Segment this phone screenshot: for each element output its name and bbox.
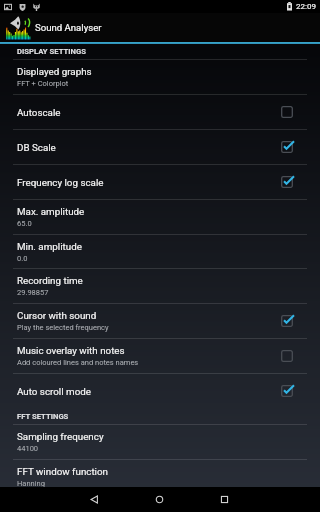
button[interactable]: Sampling frequency <box>0 425 320 459</box>
button[interactable]: Frequency log scale <box>0 165 320 199</box>
staticText: Autoscale <box>17 107 61 118</box>
staticText: Play the selected frequency <box>17 323 109 332</box>
button[interactable]: Back <box>82 487 107 512</box>
staticText: Music overlay with notes <box>17 345 125 356</box>
staticText: DISPLAY SETTINGS <box>17 47 86 56</box>
staticText: Sampling frequency <box>17 431 104 442</box>
staticText: Add coloured lines and notes names <box>17 358 139 367</box>
button[interactable]: Recording time <box>0 269 320 303</box>
staticText: Max. amplitude <box>17 206 85 217</box>
staticText: Min. amplitude <box>17 241 82 252</box>
button[interactable]: Displayed graphs <box>0 60 320 94</box>
staticText: FFT SETTINGS <box>17 412 69 421</box>
staticText: 0.0 <box>17 254 28 263</box>
button[interactable]: Max. amplitude <box>0 200 320 234</box>
staticText: DB Scale <box>17 142 56 153</box>
button[interactable]: Min. amplitude <box>0 235 320 268</box>
staticText: Auto scroll mode <box>17 386 91 397</box>
staticText: FFT window function <box>17 466 108 477</box>
staticText: Cursor with sound <box>17 310 97 321</box>
button[interactable]: Recent apps <box>212 487 237 512</box>
button[interactable]: Music overlay with notes <box>0 339 320 373</box>
button[interactable]: Cursor with sound <box>0 304 320 338</box>
staticText: Recording time <box>17 275 83 286</box>
staticText: FFT + Colorplot <box>17 79 69 88</box>
button[interactable]: Auto scroll mode <box>0 374 320 408</box>
staticText: Displayed graphs <box>17 66 92 77</box>
staticText: 22:09 <box>296 2 316 11</box>
staticText: Hanning <box>17 479 45 488</box>
staticText: 44100 <box>17 444 39 453</box>
staticText: 65.0 <box>17 219 32 228</box>
button[interactable]: DB Scale <box>0 130 320 164</box>
button[interactable]: Autoscale <box>0 95 320 129</box>
button[interactable]: Home <box>147 487 172 512</box>
staticText: 29.98857 <box>17 288 49 297</box>
staticText: Frequency log scale <box>17 177 104 188</box>
staticText: Sound Analyser <box>35 22 102 33</box>
button[interactable]: FFT window function <box>0 460 320 494</box>
